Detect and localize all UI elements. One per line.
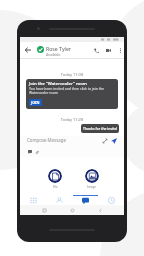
button[interactable]: Join the "Watercooler" room — [26, 79, 118, 109]
staticText: Join the "Watercooler" room — [29, 80, 87, 86]
button[interactable]: Back — [96, 206, 104, 214]
staticText: Today 11:08 — [20, 72, 124, 77]
button[interactable]: Home — [68, 206, 76, 214]
button[interactable]: Video call — [105, 47, 112, 54]
button[interactable]: History — [98, 191, 124, 205]
button[interactable]: Image — [85, 169, 99, 189]
button[interactable]: Attach file — [33, 148, 40, 155]
button[interactable]: Apps — [20, 191, 46, 205]
button[interactable]: Contacts — [46, 191, 72, 205]
staticText: Image — [87, 185, 97, 189]
button[interactable]: Send — [109, 136, 118, 145]
button[interactable]: JOIN — [29, 99, 42, 106]
button[interactable]: More options — [117, 47, 124, 54]
staticText: Compose Message — [27, 137, 66, 143]
button[interactable]: Chat — [72, 191, 98, 205]
button[interactable]: Back — [24, 46, 31, 53]
button[interactable]: Thanks for the invite! — [81, 124, 119, 133]
staticText: Today 11:28 — [20, 117, 124, 122]
button[interactable]: Recents — [40, 206, 48, 214]
staticText: Rose Tyler — [46, 45, 71, 52]
button[interactable]: File — [48, 169, 62, 189]
button[interactable]: Expand — [100, 136, 109, 145]
staticText: You have been invited and then click to … — [29, 86, 115, 95]
staticText: Available — [46, 52, 61, 57]
button[interactable]: Message type — [26, 148, 33, 155]
staticText: JOIN — [31, 100, 40, 105]
staticText: File — [53, 185, 58, 189]
button[interactable]: Call — [93, 47, 100, 54]
staticText: Thanks for the invite! — [83, 126, 118, 131]
